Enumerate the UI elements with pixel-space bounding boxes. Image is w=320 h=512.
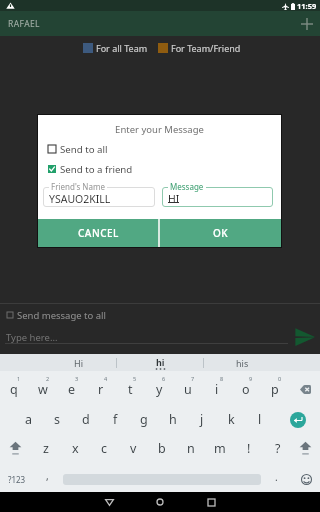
staticText: n	[187, 440, 195, 457]
staticText: 7	[191, 375, 195, 382]
button[interactable]: j	[188, 407, 216, 431]
button[interactable]: .	[262, 465, 290, 489]
button[interactable]: p	[261, 377, 289, 401]
staticText: g	[140, 411, 148, 428]
button[interactable]: m	[206, 436, 234, 460]
staticText: j	[200, 411, 204, 428]
button[interactable]: z	[32, 436, 60, 460]
staticText: 9	[249, 375, 253, 382]
staticText: his	[236, 357, 249, 369]
button[interactable]: hi	[119, 354, 201, 371]
button[interactable]: c	[90, 436, 118, 460]
button[interactable]: x	[61, 436, 89, 460]
button[interactable]: n	[177, 436, 205, 460]
staticText: h	[169, 411, 177, 428]
staticText: ,	[46, 469, 49, 483]
button[interactable]: d	[72, 407, 100, 431]
button[interactable]: s	[43, 407, 71, 431]
staticText: !	[247, 440, 251, 457]
button[interactable]: Back	[99, 492, 119, 512]
button[interactable]: b	[148, 436, 176, 460]
button[interactable]: ?	[264, 436, 292, 460]
staticText: 5	[133, 375, 137, 382]
staticText: 1	[17, 375, 21, 382]
button[interactable]: u	[174, 377, 202, 401]
button[interactable]: l	[246, 407, 274, 431]
staticText: Send message to all	[17, 309, 106, 322]
staticText: w	[38, 381, 48, 398]
button[interactable]: Emoji	[294, 467, 318, 491]
staticText: q	[10, 381, 18, 398]
staticText: 4	[104, 375, 108, 382]
button[interactable]: OK	[160, 219, 281, 247]
staticText: YSAUO2KILL	[49, 192, 111, 206]
button[interactable]: Backspace	[291, 378, 319, 400]
button[interactable]: Send to a friend	[38, 161, 168, 177]
staticText: m	[214, 440, 226, 457]
button[interactable]: e	[58, 377, 86, 401]
button[interactable]: Send	[292, 324, 318, 350]
button[interactable]: Recents	[201, 492, 221, 512]
button[interactable]: f	[101, 407, 129, 431]
button[interactable]: Home	[150, 492, 170, 512]
button[interactable]: Send message to all	[0, 306, 170, 324]
button[interactable]: a	[15, 407, 43, 431]
staticText: For Team/Friend	[171, 42, 241, 53]
staticText: HI	[168, 192, 180, 206]
staticText: 6	[162, 375, 166, 382]
button[interactable]: k	[217, 407, 245, 431]
staticText: ?123	[8, 474, 26, 485]
button[interactable]: Add	[298, 15, 316, 33]
staticText: b	[158, 440, 166, 457]
staticText: Type here…	[6, 331, 58, 344]
staticText: z	[43, 440, 49, 457]
button[interactable]: v	[119, 436, 147, 460]
staticText: hi	[156, 356, 165, 368]
button[interactable]: Send to all	[38, 141, 158, 157]
button[interactable]: Shift	[291, 436, 319, 460]
button[interactable]: ,	[33, 464, 61, 488]
staticText: 3	[75, 375, 79, 382]
staticText: s	[54, 411, 60, 428]
button[interactable]: t	[116, 377, 144, 401]
staticText: Send to a friend	[60, 163, 133, 176]
staticText: o	[242, 381, 250, 398]
button[interactable]: !	[235, 436, 263, 460]
staticText: 8	[220, 375, 224, 382]
staticText: a	[25, 411, 33, 428]
staticText: OK	[213, 226, 229, 240]
staticText: y	[156, 381, 163, 398]
staticText: Send to all	[60, 143, 108, 156]
staticText: 0	[278, 375, 282, 382]
button[interactable]: r	[87, 377, 115, 401]
staticText: f	[113, 411, 118, 428]
staticText: 2	[46, 375, 50, 382]
button[interactable]: o	[232, 377, 260, 401]
staticText: Enter your Message	[38, 123, 281, 136]
staticText: Hi	[74, 357, 83, 369]
staticText: e	[68, 381, 76, 398]
button[interactable]: q	[0, 377, 28, 401]
button[interactable]: his	[201, 354, 283, 371]
staticText: l	[258, 411, 262, 428]
button[interactable]: ?123	[1, 467, 33, 491]
staticText: p	[271, 381, 279, 398]
staticText: For all Team	[96, 42, 148, 53]
staticText: 11:59	[297, 1, 317, 11]
staticText: Message	[170, 181, 204, 192]
staticText: i	[215, 381, 219, 398]
button[interactable]: Hi	[37, 354, 119, 371]
staticText: k	[228, 411, 235, 428]
button[interactable]: i	[203, 377, 231, 401]
staticText: RAFAEL	[8, 18, 40, 30]
button[interactable]: h	[159, 407, 187, 431]
staticText: r	[98, 381, 104, 398]
button[interactable]: y	[145, 377, 173, 401]
button[interactable]: w	[29, 377, 57, 401]
staticText: x	[72, 440, 79, 457]
button[interactable]: Enter	[283, 405, 312, 434]
button[interactable]: g	[130, 407, 158, 431]
button[interactable]: Shift	[1, 436, 29, 460]
button[interactable]: CANCEL	[38, 219, 158, 247]
